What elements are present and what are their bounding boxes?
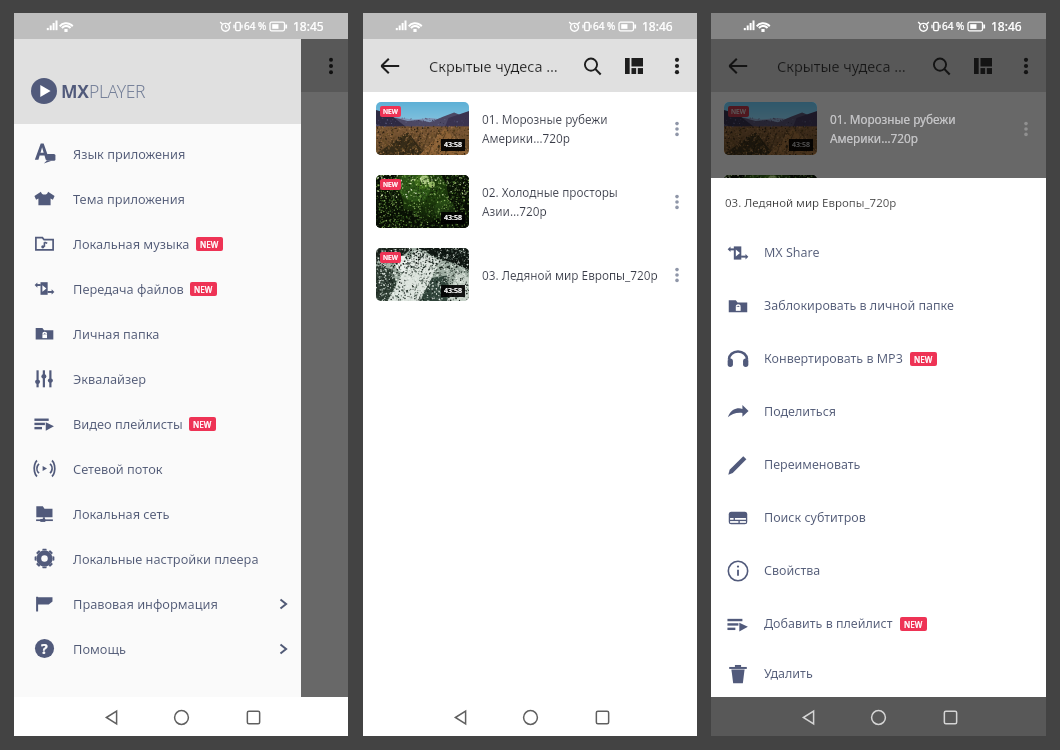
button[interactable]: Поделиться bbox=[711, 385, 1046, 438]
button[interactable]: Свойства bbox=[711, 544, 1046, 597]
staticText: 18:45 bbox=[293, 18, 324, 34]
staticText: Поиск субтитров bbox=[764, 509, 866, 526]
staticText: Язык приложения bbox=[73, 145, 186, 162]
staticText: MX Share bbox=[764, 244, 820, 261]
button[interactable]: Сетевой поток bbox=[14, 446, 301, 491]
staticText: Сетевой поток bbox=[73, 460, 163, 477]
staticText: Локальная музыка bbox=[73, 235, 190, 252]
button[interactable]: Search bbox=[921, 44, 961, 88]
button[interactable]: Удалить bbox=[711, 650, 1046, 697]
staticText: 64 % bbox=[244, 19, 267, 33]
staticText: Правовая информация bbox=[73, 595, 218, 612]
staticText: ? bbox=[41, 639, 48, 658]
staticText: Личная папка bbox=[73, 325, 160, 342]
button[interactable]: NEW bbox=[363, 92, 697, 165]
staticText: 43:58 bbox=[444, 286, 462, 296]
staticText: 03. Ледяной мир Европы_720p bbox=[482, 267, 658, 283]
button[interactable]: Back bbox=[363, 39, 416, 92]
button[interactable]: Локальные настройки плеера bbox=[14, 536, 301, 581]
button[interactable]: Добавить в плейлист bbox=[711, 597, 1046, 650]
button[interactable]: Back bbox=[711, 39, 764, 92]
staticText: 43:58 bbox=[444, 140, 462, 150]
button[interactable]: ? bbox=[14, 626, 301, 671]
button[interactable]: NEW bbox=[363, 165, 697, 238]
staticText: 02. Холодные просторы Азии…720p bbox=[482, 184, 658, 219]
staticText: Поделиться bbox=[764, 403, 836, 420]
staticText: Конвертировать в MP3 bbox=[764, 350, 903, 367]
button[interactable]: Язык приложения bbox=[14, 131, 301, 176]
staticText: Удалить bbox=[764, 665, 813, 682]
staticText: Переименовать bbox=[764, 456, 861, 473]
staticText: 01. Морозные рубежи Америки…720p bbox=[830, 111, 1007, 146]
staticText: Локальные настройки плеера bbox=[73, 550, 259, 567]
button[interactable]: Конвертировать в MP3 bbox=[711, 332, 1046, 385]
button[interactable]: Переименовать bbox=[711, 438, 1046, 491]
button[interactable]: View mode bbox=[961, 44, 1005, 88]
button[interactable]: MX Share bbox=[711, 226, 1046, 279]
button[interactable]: Home bbox=[164, 700, 198, 734]
button[interactable]: Правовая информация bbox=[14, 581, 301, 626]
button[interactable]: Back bbox=[94, 700, 128, 734]
button[interactable]: Recents bbox=[236, 700, 270, 734]
staticText: 18:46 bbox=[991, 18, 1022, 34]
staticText: Скрытые чудеса … bbox=[429, 56, 558, 76]
staticText: Добавить в плейлист bbox=[764, 615, 893, 632]
staticText: 43:58 bbox=[444, 213, 462, 223]
button[interactable]: Локальная сеть bbox=[14, 491, 301, 536]
button[interactable]: Back bbox=[791, 700, 825, 734]
staticText: Заблокировать в личной папке bbox=[764, 297, 954, 314]
staticText: 01. Морозные рубежи Америки…720p bbox=[482, 111, 658, 146]
button[interactable]: Заблокировать в личной папке bbox=[711, 279, 1046, 332]
button[interactable]: Эквалайзер bbox=[14, 356, 301, 401]
staticText: Видео плейлисты bbox=[73, 415, 183, 432]
button[interactable]: More options bbox=[658, 182, 696, 222]
button[interactable]: View mode bbox=[612, 44, 656, 88]
staticText: 03. Ледяной мир Европы_720p bbox=[725, 195, 897, 211]
staticText: MX bbox=[61, 79, 89, 103]
staticText: PLAYER bbox=[89, 79, 146, 103]
staticText: Эквалайзер bbox=[73, 370, 147, 387]
button[interactable]: More options bbox=[313, 39, 348, 92]
staticText: Локальная сеть bbox=[73, 505, 170, 522]
button[interactable]: More options bbox=[1005, 44, 1046, 88]
button[interactable]: Recents bbox=[585, 700, 619, 734]
staticText: NEW bbox=[914, 354, 933, 365]
staticText: NEW bbox=[383, 180, 398, 189]
button[interactable]: Home bbox=[861, 700, 895, 734]
staticText: Передача файлов bbox=[73, 280, 184, 297]
button[interactable]: More options bbox=[658, 109, 696, 149]
staticText: Свойства bbox=[764, 562, 821, 579]
button[interactable]: Back bbox=[443, 700, 477, 734]
staticText: NEW bbox=[731, 107, 746, 116]
staticText: NEW bbox=[200, 239, 219, 250]
button[interactable]: Close navigation drawer bbox=[14, 92, 348, 697]
staticText: Тема приложения bbox=[73, 190, 185, 207]
button[interactable]: Тема приложения bbox=[14, 176, 301, 221]
button[interactable]: Локальная музыка bbox=[14, 221, 301, 266]
button[interactable]: Search bbox=[572, 44, 612, 88]
staticText: Помощь bbox=[73, 640, 126, 657]
staticText: 64 % bbox=[942, 19, 965, 33]
staticText: 02. Холодные просторы Азии…720p bbox=[830, 184, 1007, 219]
button[interactable]: Home bbox=[513, 700, 547, 734]
button[interactable]: Личная папка bbox=[14, 311, 301, 356]
button[interactable]: Поиск субтитров bbox=[711, 491, 1046, 544]
button[interactable]: Видео плейлисты bbox=[14, 401, 301, 446]
button[interactable]: Recents bbox=[933, 700, 967, 734]
staticText: NEW bbox=[383, 253, 398, 262]
button[interactable]: More options bbox=[658, 255, 696, 295]
button[interactable]: Передача файлов bbox=[14, 266, 301, 311]
staticText: NEW bbox=[193, 419, 212, 430]
staticText: 18:46 bbox=[642, 18, 673, 34]
button[interactable]: NEW bbox=[363, 238, 697, 311]
staticText: NEW bbox=[383, 107, 398, 116]
button[interactable]: More options bbox=[656, 44, 697, 88]
staticText: 43:58 bbox=[792, 140, 810, 150]
staticText: NEW bbox=[904, 619, 923, 630]
staticText: NEW bbox=[194, 284, 213, 295]
staticText: 64 % bbox=[593, 19, 616, 33]
staticText: Скрытые чудеса … bbox=[777, 56, 906, 76]
